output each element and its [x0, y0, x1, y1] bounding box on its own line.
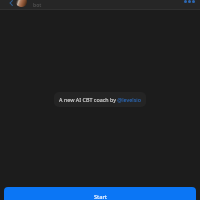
button[interactable]: More options [184, 0, 196, 7]
staticText: bot [33, 2, 42, 9]
staticText: A new AI CBT coach by @levelsio [59, 96, 141, 103]
staticText: Start [94, 193, 107, 200]
button[interactable]: Start [4, 187, 196, 200]
button[interactable]: Back [7, 0, 14, 6]
